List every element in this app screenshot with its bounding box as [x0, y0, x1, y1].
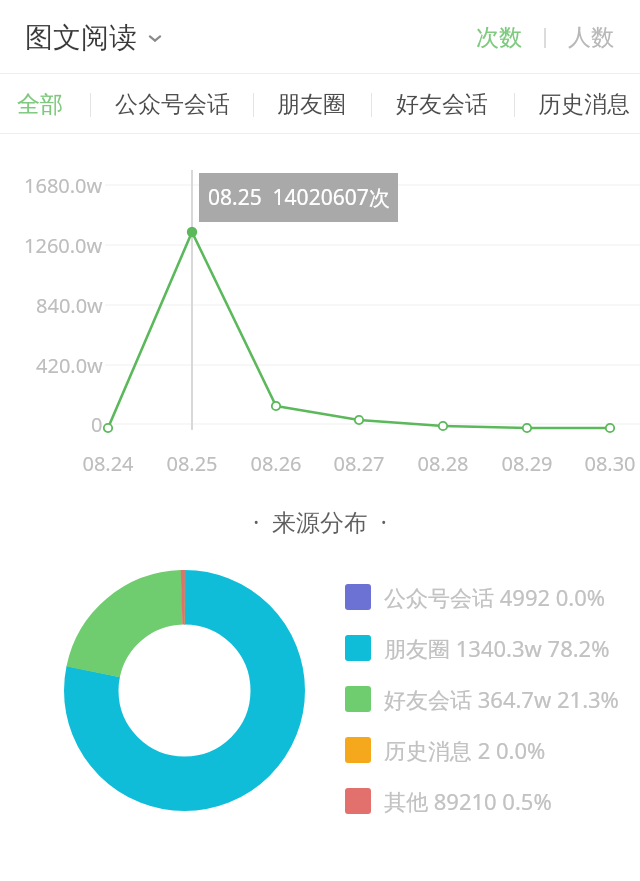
button[interactable]: 其他 89210 0.5%	[345, 780, 635, 822]
button[interactable]: 好友会话 364.7w 21.3%	[345, 678, 635, 720]
staticText: · 来源分布 ·	[253, 505, 387, 538]
button[interactable]: 公众号会话	[110, 75, 235, 134]
staticText: 公众号会话 4992 0.0%	[384, 582, 606, 612]
staticText: 1680.0w	[24, 172, 103, 199]
staticText: 08.30	[584, 450, 636, 477]
staticText: 08.27	[333, 450, 385, 477]
button[interactable]: 好友会话	[389, 75, 495, 134]
button[interactable]: 朋友圈	[271, 75, 352, 134]
staticText: 其他 89210 0.5%	[384, 786, 552, 816]
button[interactable]: 全部	[10, 75, 69, 134]
staticText: 08.28	[417, 450, 469, 477]
button[interactable]: 图文阅读	[25, 20, 163, 55]
staticText: 图文阅读	[25, 20, 137, 55]
staticText: 0	[91, 411, 103, 438]
button[interactable]: 历史消息	[533, 75, 635, 134]
staticText: 08.25	[166, 450, 218, 477]
button[interactable]: 朋友圈 1340.3w 78.2%	[345, 627, 635, 669]
staticText: 历史消息 2 0.0%	[384, 735, 546, 765]
staticText: 840.0w	[36, 292, 103, 319]
staticText: 人数	[568, 23, 614, 52]
staticText: 全部	[17, 90, 63, 119]
button[interactable]: 历史消息 2 0.0%	[345, 729, 635, 771]
staticText: 次数	[476, 23, 522, 52]
staticText: 朋友圈	[277, 90, 346, 119]
staticText: 朋友圈 1340.3w 78.2%	[384, 633, 610, 663]
staticText: 08.25 14020607次	[208, 183, 390, 212]
staticText: 420.0w	[36, 352, 103, 379]
button[interactable]: 公众号会话 4992 0.0%	[345, 576, 635, 618]
staticText: 08.29	[501, 450, 553, 477]
staticText: 08.26	[250, 450, 302, 477]
button[interactable]: 次数	[472, 17, 526, 58]
button[interactable]: 人数	[564, 17, 618, 58]
staticText: 公众号会话	[115, 90, 230, 119]
staticText: 1260.0w	[24, 232, 103, 259]
staticText: 好友会话	[396, 90, 488, 119]
staticText: 历史消息	[538, 90, 630, 119]
staticText: 08.24	[82, 450, 134, 477]
staticText: 好友会话 364.7w 21.3%	[384, 684, 619, 714]
